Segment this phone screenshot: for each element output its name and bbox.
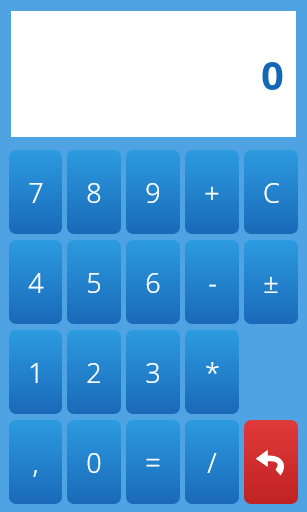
staticText: / — [207, 444, 217, 481]
staticText: C — [263, 174, 280, 211]
staticText: 5 — [86, 264, 102, 301]
staticText: 3 — [145, 354, 161, 391]
staticText: 1 — [28, 354, 44, 391]
staticText: , — [32, 444, 39, 481]
button[interactable]: 7 — [9, 150, 62, 234]
button[interactable]: = — [126, 420, 180, 504]
staticText: 9 — [145, 174, 161, 211]
button[interactable]: 8 — [67, 150, 121, 234]
staticText: - — [208, 264, 217, 301]
button[interactable]: / — [185, 420, 239, 504]
button[interactable]: 5 — [67, 240, 121, 324]
button[interactable]: - — [185, 240, 239, 324]
button[interactable]: * — [185, 330, 239, 414]
staticText: ± — [263, 264, 279, 301]
staticText: 6 — [145, 264, 161, 301]
button[interactable]: + — [185, 150, 239, 234]
button[interactable]: 9 — [126, 150, 180, 234]
button[interactable]: ± — [244, 240, 298, 324]
staticText: 2 — [86, 354, 102, 391]
staticText: 0 — [261, 47, 284, 101]
button[interactable]: 6 — [126, 240, 180, 324]
staticText: 7 — [28, 174, 44, 211]
staticText: = — [145, 444, 161, 481]
button[interactable]: Backspace — [244, 420, 298, 504]
button[interactable]: , — [9, 420, 62, 504]
staticText: 8 — [86, 174, 102, 211]
staticText: 4 — [28, 264, 44, 301]
button[interactable]: C — [244, 150, 298, 234]
staticText: + — [204, 174, 220, 211]
button[interactable]: 2 — [67, 330, 121, 414]
button[interactable]: 1 — [9, 330, 62, 414]
staticText: * — [205, 354, 220, 391]
button[interactable]: 3 — [126, 330, 180, 414]
button[interactable]: 4 — [9, 240, 62, 324]
button[interactable]: 0 — [67, 420, 121, 504]
staticText: 0 — [86, 444, 102, 481]
